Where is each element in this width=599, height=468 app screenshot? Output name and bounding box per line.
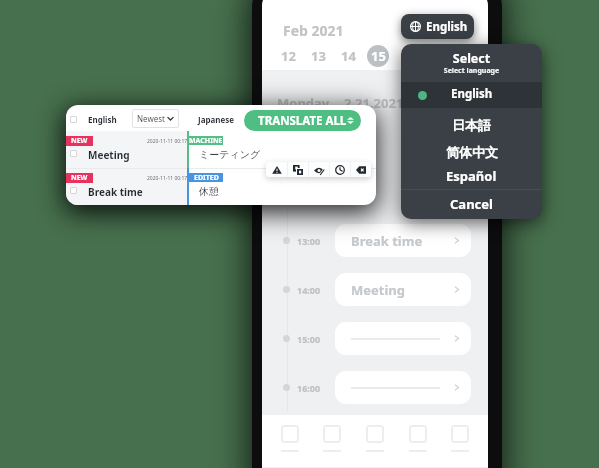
button[interactable]: Newest [132,109,179,128]
staticText: TRANSLATE ALL [258,113,347,129]
staticText: English [451,86,493,102]
button[interactable]: Español [401,164,542,188]
staticText: NEW [71,136,88,146]
button[interactable]: History [330,162,350,177]
button[interactable]: 15 [367,45,389,67]
staticText: 15 [371,47,386,65]
button[interactable] [335,322,471,355]
staticText: 16:00 [297,382,321,394]
staticText: Español [446,167,497,185]
staticText: Break time [351,232,452,250]
staticText: 13 [311,47,326,65]
button[interactable]: Cancel [401,190,542,218]
staticText: English [88,114,117,125]
staticText: 14:00 [297,284,321,296]
staticText: 2.21.2021 [344,94,404,112]
staticText: Break time [88,185,143,199]
staticText: 13:00 [297,235,321,247]
staticText: NEW [71,173,88,183]
staticText: Feb 2021 [283,21,344,40]
staticText: ミーティング [199,148,261,161]
button[interactable]: 14 [337,45,359,67]
button[interactable]: TRANSLATE ALL [244,110,361,131]
staticText: 休憩 [199,185,219,198]
staticText: Meeting [351,281,452,299]
button[interactable]: English [401,14,474,39]
staticText: 12 [281,47,296,65]
staticText: 14 [341,47,356,65]
staticText: Monday [277,94,330,112]
staticText: Cancel [450,195,493,213]
staticText: Select language [401,66,542,76]
staticText: Japanese [198,114,235,125]
staticText: EDITED [194,173,219,182]
button[interactable]: Meeting [335,273,471,306]
staticText: 2020-11-11 00:17 [147,138,188,145]
button[interactable]: Warning [266,162,287,177]
staticText: 2020-11-11 00:17 [147,175,188,182]
button[interactable]: Select row [70,150,77,157]
staticText: 15:00 [297,333,321,345]
button[interactable]: Tab [317,421,347,456]
button[interactable]: 13 [307,45,329,67]
button[interactable]: Select all [70,116,77,123]
button[interactable]: Delete [351,162,371,177]
button[interactable]: 简体中文 [401,140,542,164]
button[interactable]: English [401,82,542,108]
staticText: Select [401,50,542,67]
button[interactable]: Tab [445,421,475,456]
button[interactable]: Tab [275,421,305,456]
staticText: 日本語 [452,117,491,133]
button[interactable]: Tab [360,421,390,456]
button[interactable]: Hide [309,162,329,177]
button[interactable]: 日本語 [401,112,542,138]
staticText: MACHINE [189,136,223,145]
button[interactable]: Translate [288,162,308,177]
button[interactable]: Select row [70,187,77,194]
staticText: Newest [137,113,165,124]
button[interactable]: 12 [277,45,299,67]
staticText: 简体中文 [446,144,498,160]
button[interactable]: Tab [403,421,433,456]
staticText: English [426,19,468,35]
button[interactable] [335,371,471,404]
staticText: Meeting [88,148,130,162]
button[interactable]: Break time [335,224,471,257]
